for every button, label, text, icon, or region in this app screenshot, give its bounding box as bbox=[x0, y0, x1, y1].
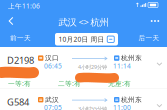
staticText: 10月20日 周日 bbox=[58, 35, 104, 44]
button[interactable]: 10月20日 周日 bbox=[55, 33, 118, 45]
staticText: 后一天 bbox=[138, 34, 159, 42]
staticText: 武汉 <> 杭州 bbox=[58, 16, 108, 28]
staticText: 汉口 bbox=[45, 54, 59, 62]
staticText: 上午11:06 bbox=[8, 1, 40, 10]
button[interactable]: G584 bbox=[0, 89, 167, 110]
button[interactable]: Back bbox=[1, 13, 21, 29]
staticText: G584 bbox=[7, 96, 29, 108]
staticText: 杭州东 bbox=[121, 54, 142, 62]
staticText: 11:14 bbox=[113, 61, 131, 70]
staticText: 07:05 bbox=[44, 103, 62, 110]
staticText: 杭州东 bbox=[121, 96, 142, 104]
button[interactable]: 前一天 bbox=[2, 30, 38, 46]
staticText: 3小时55分钟 bbox=[78, 105, 107, 110]
staticText: 前一天 bbox=[10, 34, 31, 42]
staticText: 二等:有 bbox=[58, 79, 81, 88]
staticText: D2198 bbox=[7, 54, 34, 66]
staticText: 无座:有 bbox=[108, 79, 131, 88]
staticText: 武汉 bbox=[45, 96, 59, 104]
staticText: 11:00 bbox=[113, 103, 131, 110]
button[interactable]: 后一天 bbox=[131, 30, 167, 46]
staticText: 一等:有 bbox=[8, 79, 31, 88]
button[interactable]: More options bbox=[144, 13, 166, 29]
staticText: 4小时29分钟 bbox=[78, 63, 107, 71]
staticText: 06:45 bbox=[44, 61, 62, 70]
button[interactable]: D2198 bbox=[0, 47, 167, 88]
